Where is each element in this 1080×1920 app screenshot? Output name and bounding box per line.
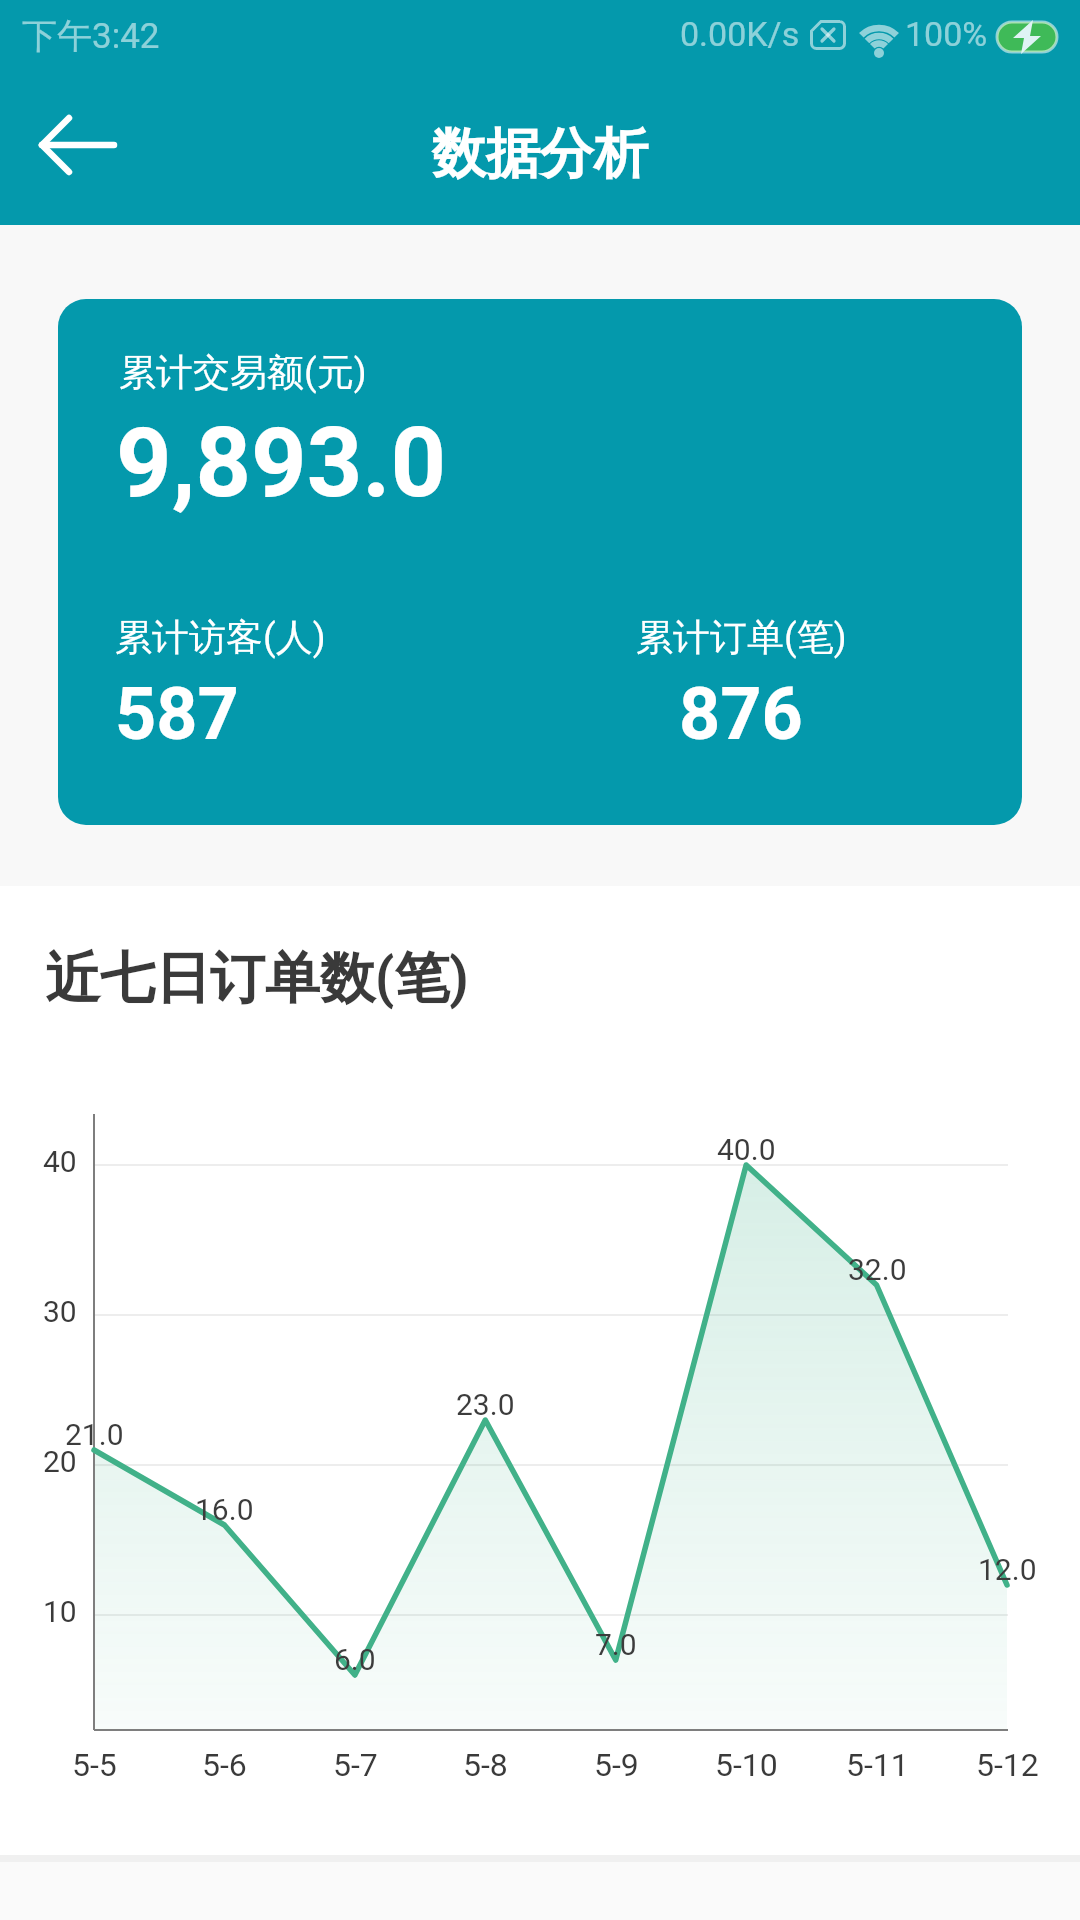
staticText: 10	[43, 1594, 77, 1629]
button[interactable]: 累计交易额(元)	[58, 299, 1022, 825]
staticText: 23.0	[456, 1387, 515, 1422]
staticText: 21.0	[65, 1417, 124, 1452]
staticText: 30	[43, 1294, 77, 1329]
staticText: 5-11	[846, 1746, 909, 1784]
staticText: 7.0	[595, 1627, 637, 1662]
staticText: 累计访客(人)	[115, 614, 326, 661]
staticText: 5-6	[202, 1746, 247, 1784]
staticText: 近七日订单数(笔)	[45, 944, 469, 1013]
staticText: 32.0	[848, 1252, 907, 1287]
staticText: 数据分析	[432, 120, 648, 188]
staticText: 累计订单(笔)	[636, 614, 847, 661]
staticText: 5-9	[594, 1746, 639, 1784]
staticText: 5-10	[715, 1746, 778, 1784]
staticText: 40	[43, 1144, 77, 1179]
staticText: 累计交易额(元)	[119, 349, 367, 396]
staticText: 5-8	[463, 1746, 508, 1784]
staticText: 16.0	[195, 1492, 254, 1527]
staticText: 下午3:42	[22, 14, 160, 58]
staticText: 20	[43, 1444, 77, 1479]
staticText: 9,893.0	[116, 406, 447, 520]
staticText: 5-12	[976, 1746, 1039, 1784]
staticText: 40.0	[717, 1132, 776, 1167]
staticText: 12.0	[978, 1552, 1037, 1587]
button[interactable]	[30, 103, 130, 187]
staticText: 6.0	[334, 1642, 376, 1677]
staticText: 587	[115, 672, 239, 756]
staticText: 100%	[905, 14, 988, 54]
staticText: 5-5	[72, 1746, 117, 1784]
staticText: 5-7	[333, 1746, 378, 1784]
staticText: 876	[679, 672, 803, 756]
staticText: 0.00K/s	[680, 14, 800, 54]
